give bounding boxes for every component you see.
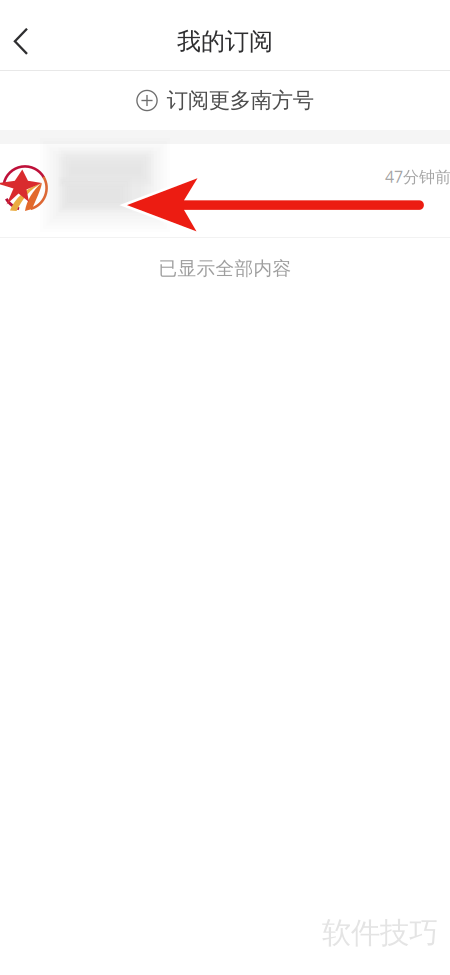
staticText: 47分钟前 bbox=[385, 166, 450, 187]
staticText: 订阅更多南方号 bbox=[167, 87, 314, 114]
staticText: 软件技巧 bbox=[322, 915, 438, 951]
staticText: 已显示全部内容 bbox=[158, 257, 291, 280]
button[interactable] bbox=[0, 144, 450, 237]
button[interactable]: Back bbox=[0, 18, 42, 64]
staticText: 我的订阅 bbox=[177, 27, 273, 56]
button[interactable]: 订阅更多南方号 bbox=[0, 71, 450, 130]
